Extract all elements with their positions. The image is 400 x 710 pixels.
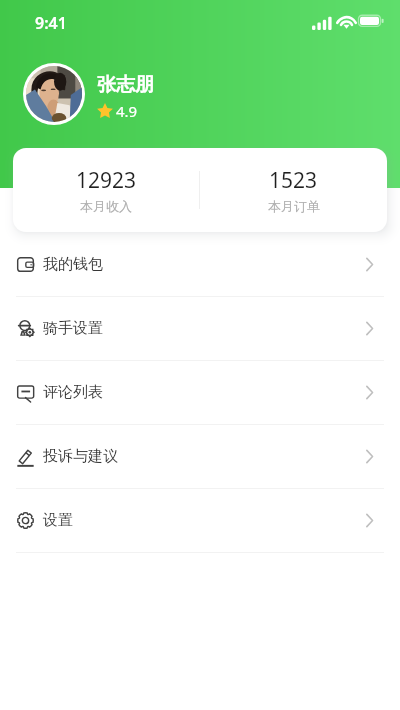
staticText: 我的钱包 — [43, 255, 103, 274]
button[interactable]: 评论列表 — [0, 361, 400, 424]
staticText: 4.9 — [116, 101, 138, 121]
staticText: 设置 — [43, 511, 73, 530]
button[interactable]: 12923 — [13, 166, 199, 214]
button[interactable]: 设置 — [0, 489, 400, 552]
staticText: 1523 — [269, 166, 318, 195]
staticText: 投诉与建议 — [43, 447, 118, 466]
staticText: 骑手设置 — [43, 319, 103, 338]
button[interactable]: 张志朋 — [23, 63, 154, 125]
button[interactable]: 骑手设置 — [0, 297, 400, 360]
staticText: 评论列表 — [43, 383, 103, 402]
staticText: 本月订单 — [268, 198, 320, 214]
button[interactable]: 投诉与建议 — [0, 425, 400, 488]
staticText: 张志朋 — [97, 73, 154, 97]
button[interactable]: 1523 — [200, 166, 387, 214]
staticText: 12923 — [76, 166, 137, 195]
staticText: 本月收入 — [80, 198, 132, 214]
button[interactable]: 我的钱包 — [0, 233, 400, 296]
other: Status icons — [312, 14, 388, 30]
staticText: 9:41 — [35, 12, 67, 34]
